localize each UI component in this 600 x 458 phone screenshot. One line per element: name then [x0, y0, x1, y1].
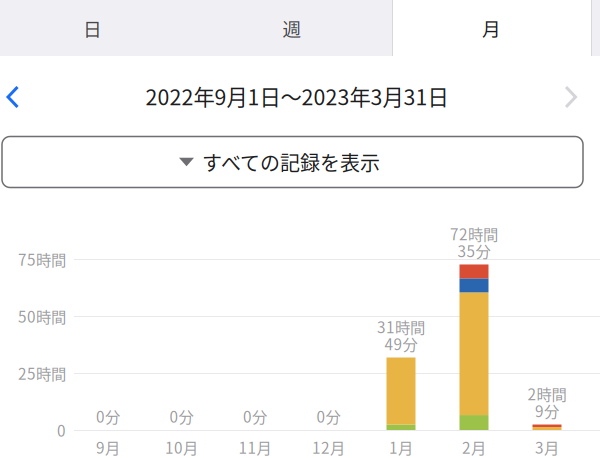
- staticText: 72時間: [450, 222, 498, 245]
- staticText: 12月: [312, 436, 345, 458]
- staticText: 2022年9月1日〜2023年3月31日: [145, 81, 448, 111]
- button[interactable]: Next period: [0, 0, 600, 194]
- staticText: 0分: [243, 405, 267, 427]
- button[interactable]: Previous period: [0, 0, 46, 194]
- staticText: 25時間: [18, 362, 66, 384]
- staticText: 49分: [384, 332, 417, 355]
- staticText: 0分: [169, 405, 193, 427]
- staticText: 31時間: [377, 315, 425, 338]
- staticText: 75時間: [18, 248, 66, 270]
- staticText: 2時間: [527, 382, 566, 405]
- staticText: 月: [482, 14, 501, 41]
- button[interactable]: すべての記録を表示: [2, 136, 583, 187]
- staticText: 35分: [457, 239, 490, 262]
- button[interactable]: 月: [392, 0, 591, 56]
- staticText: 日: [83, 14, 102, 41]
- staticText: 11月: [238, 436, 271, 458]
- staticText: 9月: [96, 436, 120, 458]
- button[interactable]: 日: [0, 0, 185, 56]
- staticText: 10月: [165, 436, 198, 458]
- staticText: 9分: [535, 399, 559, 422]
- staticText: 2月: [462, 436, 486, 458]
- staticText: 50時間: [18, 305, 66, 327]
- staticText: 週: [282, 14, 301, 41]
- staticText: 3月: [535, 436, 559, 458]
- staticText: 1月: [389, 436, 413, 458]
- staticText: 0: [57, 419, 66, 441]
- staticText: 0分: [96, 405, 120, 427]
- staticText: 0分: [316, 405, 340, 427]
- button[interactable]: 週: [192, 0, 392, 56]
- staticText: すべての記録を表示: [202, 147, 380, 176]
